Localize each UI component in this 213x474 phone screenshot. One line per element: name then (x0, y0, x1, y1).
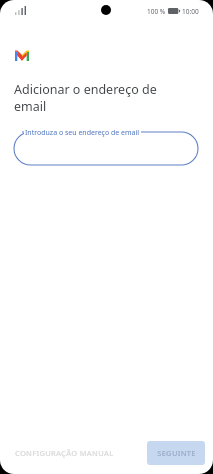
staticText: 100 % (147, 7, 166, 16)
staticText: Introduza o seu endereço de email (25, 128, 140, 138)
button[interactable]: Introduza o seu endereço de email (14, 126, 198, 165)
staticText: 10:00 (182, 7, 199, 16)
staticText: Adicionar o endereço de email (14, 81, 157, 115)
button[interactable]: CONFIGURAÇÃO MANUAL (14, 443, 115, 463)
staticText: SEGUINTE (157, 448, 196, 458)
staticText: CONFIGURAÇÃO MANUAL (15, 448, 114, 458)
button[interactable]: SEGUINTE (147, 441, 205, 465)
